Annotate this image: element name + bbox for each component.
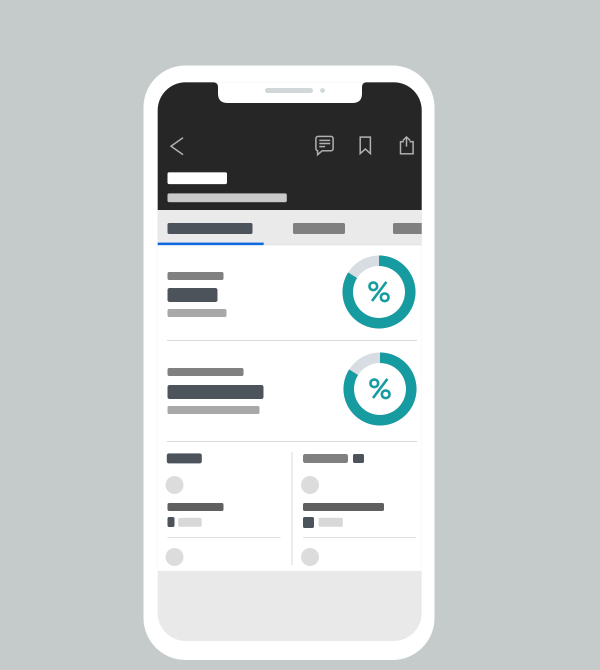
button[interactable]: Bookmark xyxy=(158,82,422,641)
button[interactable]: Back xyxy=(158,82,422,641)
button[interactable]: Comments xyxy=(158,82,422,641)
button[interactable] xyxy=(158,82,422,641)
button[interactable] xyxy=(158,82,422,641)
button[interactable] xyxy=(158,82,422,641)
button[interactable]: Share xyxy=(158,82,422,641)
